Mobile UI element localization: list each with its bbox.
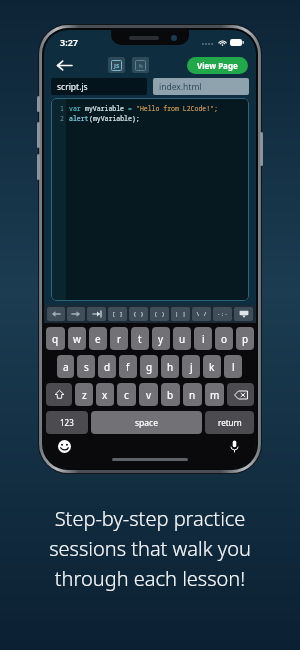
staticText: i xyxy=(202,332,205,346)
button[interactable]: h xyxy=(161,355,179,378)
staticText: ( ) xyxy=(154,310,165,318)
staticText: 1 xyxy=(60,104,64,113)
button[interactable]: Tab xyxy=(87,307,106,321)
button[interactable]: i xyxy=(194,327,212,350)
staticText: [ ] xyxy=(112,310,123,318)
button[interactable]: Shift xyxy=(46,383,72,406)
staticText: q xyxy=(52,332,59,346)
button[interactable]: x xyxy=(96,383,114,406)
button[interactable]: Pipe xyxy=(171,307,190,321)
staticText: Step-by-step practice xyxy=(12,505,288,532)
button[interactable]: Back xyxy=(52,53,76,77)
staticText: h xyxy=(139,62,143,70)
staticText: d xyxy=(104,360,111,374)
staticText: return xyxy=(218,417,242,428)
staticText: sessions that walk you xyxy=(12,535,288,562)
staticText: s xyxy=(84,360,89,374)
button[interactable]: g xyxy=(140,355,158,378)
button[interactable]: k xyxy=(203,355,221,378)
staticText: x xyxy=(102,388,108,402)
button[interactable]: Hide keyboard xyxy=(234,307,253,321)
staticText: "Hello from L2Code!"; xyxy=(136,104,218,113)
staticText: c xyxy=(124,388,129,402)
staticText: e xyxy=(95,332,101,346)
staticText: n xyxy=(189,388,196,402)
button[interactable]: JavaScript file xyxy=(108,57,125,73)
button[interactable]: Symbols xyxy=(213,307,232,321)
button[interactable]: Undo xyxy=(47,307,65,321)
button[interactable]: 123 xyxy=(46,411,88,434)
button[interactable]: v xyxy=(139,383,158,406)
button[interactable]: Braces xyxy=(129,307,148,321)
button[interactable]: Parentheses xyxy=(150,307,169,321)
button[interactable]: a xyxy=(57,355,74,378)
button[interactable]: p xyxy=(236,327,254,350)
staticText: alert xyxy=(69,114,89,123)
button[interactable]: script.js xyxy=(51,78,147,95)
button[interactable]: s xyxy=(77,355,95,378)
button[interactable]: Dictate xyxy=(226,438,242,454)
button[interactable]: Slash xyxy=(192,307,211,321)
button[interactable]: r xyxy=(110,327,128,350)
staticText: g xyxy=(146,360,153,374)
staticText: f xyxy=(126,360,130,374)
button[interactable]: u xyxy=(173,327,191,350)
staticText: script.js xyxy=(57,81,88,93)
button[interactable]: index.html xyxy=(153,78,249,95)
staticText: 3:27 xyxy=(60,36,78,48)
button[interactable]: Backspace xyxy=(227,383,254,406)
button[interactable]: return xyxy=(205,411,254,434)
staticText: = xyxy=(128,104,136,113)
staticText: 123 xyxy=(60,417,74,428)
button[interactable]: Brackets xyxy=(108,307,127,321)
button[interactable]: space xyxy=(91,411,202,434)
staticText: ·:· xyxy=(217,310,228,318)
staticText: y xyxy=(158,332,164,346)
button[interactable]: Emoji xyxy=(56,438,72,454)
button[interactable]: o xyxy=(215,327,233,350)
staticText: w xyxy=(73,332,81,346)
staticText: p xyxy=(242,332,249,346)
button[interactable]: d xyxy=(98,355,116,378)
staticText: o xyxy=(221,332,228,346)
button[interactable]: w xyxy=(68,327,86,350)
staticText: (myVariable); xyxy=(89,114,140,123)
staticText: View Page xyxy=(197,60,238,71)
staticText: \ / xyxy=(196,310,207,318)
button[interactable]: e xyxy=(89,327,107,350)
button[interactable]: b xyxy=(161,383,180,406)
staticText: l xyxy=(232,360,235,374)
staticText: b xyxy=(167,388,174,402)
staticText: 2 xyxy=(60,114,64,123)
staticText: var xyxy=(69,104,85,113)
staticText: { } xyxy=(133,310,144,318)
button[interactable]: y xyxy=(152,327,170,350)
button[interactable]: t xyxy=(131,327,149,350)
button[interactable]: c xyxy=(117,383,136,406)
staticText: through each lesson! xyxy=(12,565,288,592)
button[interactable]: q xyxy=(46,327,65,350)
button[interactable]: HTML file xyxy=(132,57,149,73)
button[interactable]: j xyxy=(182,355,200,378)
button[interactable]: f xyxy=(119,355,137,378)
button[interactable]: View Page xyxy=(187,57,248,74)
staticText: a xyxy=(63,360,69,374)
staticText: j xyxy=(190,360,193,374)
staticText: m xyxy=(210,388,220,402)
button[interactable]: m xyxy=(205,383,224,406)
staticText: myVariable xyxy=(85,104,128,113)
staticText: u xyxy=(179,332,186,346)
staticText: h xyxy=(167,360,174,374)
staticText: index.html xyxy=(159,81,202,93)
staticText: z xyxy=(82,388,87,402)
button[interactable]: l xyxy=(224,355,242,378)
staticText: v xyxy=(146,388,152,402)
staticText: r xyxy=(117,332,122,346)
staticText: JS xyxy=(114,62,120,70)
button[interactable]: Redo xyxy=(67,307,85,321)
button[interactable]: z xyxy=(75,383,93,406)
staticText: t xyxy=(138,332,142,346)
staticText: k xyxy=(209,360,215,374)
button[interactable]: n xyxy=(183,383,202,406)
staticText: | | xyxy=(175,310,186,318)
